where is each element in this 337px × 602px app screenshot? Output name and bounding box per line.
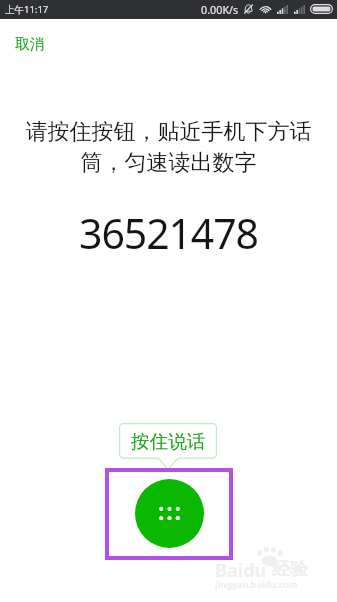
staticText: jingyan.baidu.com — [215, 578, 298, 590]
staticText: 请按住按钮，贴近手机下方话 筒，匀速读出数字 — [0, 118, 337, 176]
staticText: Baidu — [215, 558, 267, 583]
staticText: 上午11:17 — [5, 3, 49, 16]
staticText: 按住说话 — [131, 430, 206, 453]
button[interactable]: 按住说话 — [135, 479, 204, 548]
staticText: 经验 — [272, 558, 308, 581]
button[interactable]: 取消 — [7, 30, 53, 59]
staticText: 0.00K/s — [201, 2, 239, 17]
staticText: 36521478 — [0, 205, 337, 261]
staticText: 取消 — [15, 35, 45, 54]
